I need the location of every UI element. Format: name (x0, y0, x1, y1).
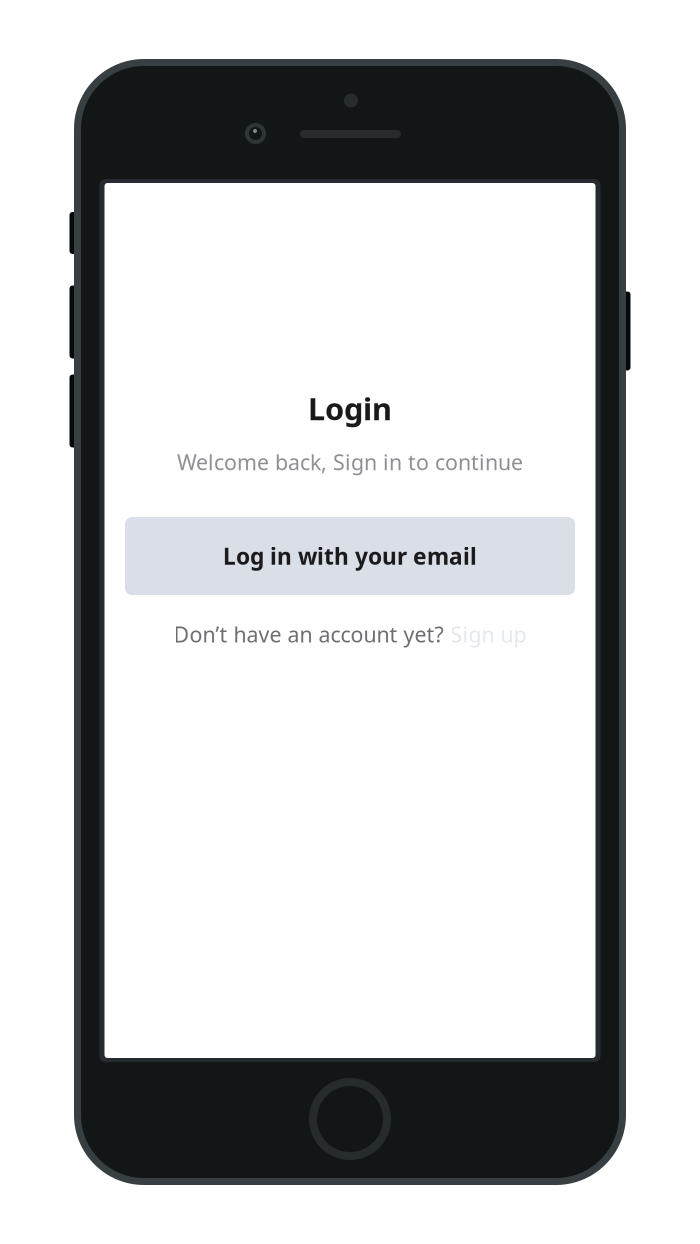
staticText: Welcome back, Sign in to continue (177, 448, 523, 476)
staticText: Sign up (450, 620, 526, 648)
staticText: Login (308, 388, 392, 429)
staticText: Log in with your email (223, 541, 477, 571)
staticText: Don’t have an account yet? (173, 620, 443, 648)
button[interactable]: Log in with your email (125, 517, 575, 595)
button[interactable]: Sign up (450, 620, 526, 648)
